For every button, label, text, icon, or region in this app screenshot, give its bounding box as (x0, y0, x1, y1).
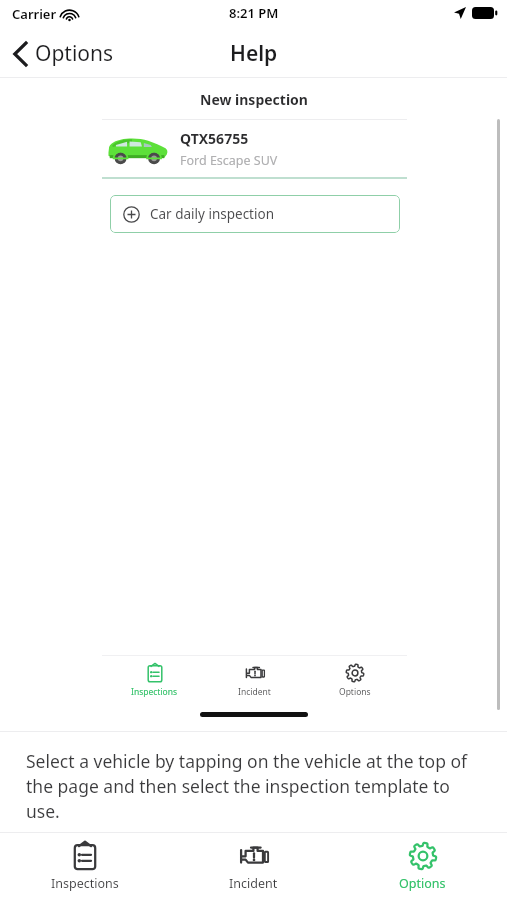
staticText: Inspections (51, 875, 119, 892)
staticText: Options (35, 39, 114, 68)
button[interactable]: Incident (207, 656, 302, 704)
button[interactable]: Inspections (107, 656, 202, 704)
other: Inspections (70, 841, 100, 871)
other: Options (408, 841, 438, 871)
staticText: Select a vehicle by tapping on the vehic… (26, 749, 485, 823)
other: Inspections (145, 663, 165, 683)
staticText: Inspections (131, 686, 178, 698)
staticText: Incident (229, 875, 278, 892)
button[interactable]: QTX56755 (102, 120, 407, 177)
button[interactable]: Options (307, 656, 402, 704)
other: Options (345, 663, 365, 683)
button[interactable]: Options (0, 33, 126, 74)
button[interactable]: Incident (169, 833, 338, 900)
staticText: Options (339, 686, 371, 698)
staticText: Incident (238, 686, 271, 698)
staticText: Options (399, 875, 446, 892)
other: Incident (239, 841, 269, 871)
staticText: Ford Escape SUV (180, 152, 278, 169)
other: Incident (245, 663, 265, 683)
staticText: New inspection (200, 90, 308, 109)
staticText: Car daily inspection (150, 205, 274, 223)
button[interactable]: Car daily inspection (110, 195, 400, 233)
staticText: 8:21 PM (229, 4, 279, 22)
staticText: QTX56755 (180, 129, 249, 148)
staticText: Carrier (12, 5, 57, 23)
button[interactable]: Inspections (0, 833, 169, 900)
staticText: Help (230, 39, 278, 68)
button[interactable]: Options (338, 833, 507, 900)
